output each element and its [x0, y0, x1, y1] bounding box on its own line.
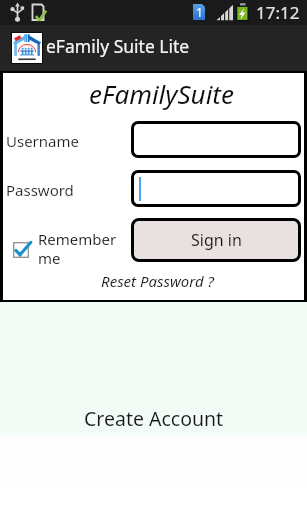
button[interactable] [131, 121, 301, 158]
staticText: Create Account [84, 405, 224, 432]
staticText: eFamily Suite Lite [46, 34, 190, 58]
staticText: eFamilySuite [89, 76, 234, 111]
button[interactable]: Reset Password ? [101, 271, 214, 291]
staticText: Remember me [38, 229, 117, 269]
button[interactable]: Create Account [0, 401, 307, 435]
button[interactable]: Remember me [13, 229, 117, 269]
staticText: Password [6, 180, 74, 200]
staticText: Reset Password ? [101, 271, 214, 291]
button[interactable]: eFamily Suite app icon [12, 33, 42, 63]
staticText: Username [6, 131, 79, 151]
button[interactable]: Sign in [134, 221, 298, 259]
button[interactable] [131, 170, 301, 207]
staticText: Sign in [191, 229, 242, 251]
staticText: 1 [196, 4, 203, 20]
staticText: 17:12 [256, 1, 300, 24]
